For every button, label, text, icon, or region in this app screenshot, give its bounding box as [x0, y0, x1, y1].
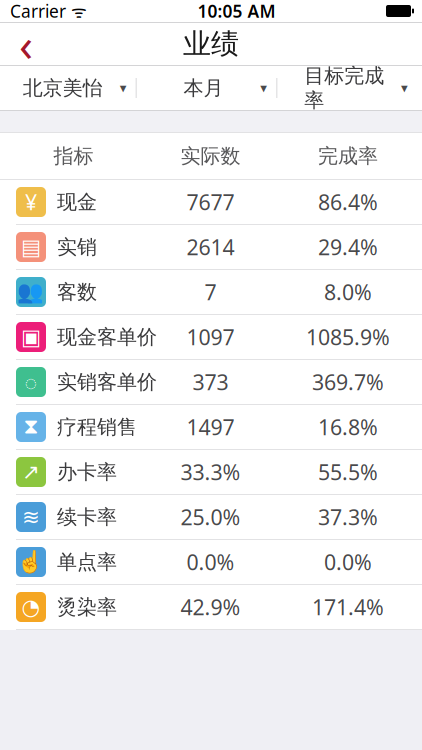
staticText: 369.7% — [312, 368, 384, 396]
staticText: 烫染率 — [57, 595, 117, 619]
staticText: 7677 — [186, 188, 234, 216]
staticText: ▤ — [21, 235, 41, 259]
staticText: 北京美怡 — [23, 76, 103, 100]
staticText: 1497 — [186, 413, 234, 441]
button[interactable]: Back — [0, 23, 52, 65]
staticText: 客数 — [57, 280, 97, 304]
staticText: ▾ — [260, 80, 267, 95]
staticText: 疗程销售 — [57, 415, 137, 439]
staticText: Carrier — [10, 0, 66, 22]
button[interactable]: 👥 — [0, 270, 422, 315]
staticText: 实销客单价 — [57, 370, 157, 394]
staticText: 实销 — [57, 235, 97, 259]
staticText: 25.0% — [180, 503, 240, 531]
button[interactable]: ◔ — [0, 585, 422, 630]
button[interactable]: ⧗ — [0, 405, 422, 450]
staticText: 16.8% — [318, 413, 378, 441]
staticText: 实际数 — [180, 144, 240, 168]
staticText: 办卡率 — [57, 460, 117, 484]
staticText: 33.3% — [180, 458, 240, 486]
staticText: 8.0% — [324, 278, 372, 306]
staticText: 42.9% — [180, 593, 240, 621]
button[interactable]: ≋ — [0, 495, 422, 540]
staticText: ↗ — [22, 460, 40, 484]
staticText: 86.4% — [318, 188, 378, 216]
button[interactable]: 目标完成率 — [281, 66, 422, 110]
staticText: 2614 — [186, 233, 234, 261]
button[interactable]: ☝ — [0, 540, 422, 585]
staticText: 指标 — [53, 144, 93, 168]
staticText: ᯤ — [66, 0, 87, 22]
staticText: 单点率 — [57, 550, 117, 574]
staticText: 业绩 — [183, 27, 239, 61]
button[interactable]: ¥ — [0, 180, 422, 225]
staticText: 0.0% — [186, 548, 234, 576]
staticText: 1097 — [186, 323, 234, 351]
staticText: ▣ — [21, 325, 41, 349]
staticText: ⧗ — [23, 417, 38, 437]
staticText: 目标完成率 — [304, 63, 384, 112]
staticText: 29.4% — [318, 233, 378, 261]
staticText: 完成率 — [318, 144, 378, 168]
staticText: ◔ — [21, 595, 40, 619]
staticText: 7 — [204, 278, 216, 306]
staticText: 10:05 AM — [197, 0, 275, 22]
button[interactable]: 北京美怡 — [0, 66, 141, 110]
staticText: 👥 — [17, 280, 44, 304]
button[interactable]: ▣ — [0, 315, 422, 360]
staticText: 现金客单价 — [57, 325, 157, 349]
staticText: ▾ — [120, 80, 127, 95]
staticText: 171.4% — [312, 593, 384, 621]
staticText: ◌ — [24, 368, 37, 396]
button[interactable]: ↗ — [0, 450, 422, 495]
staticText: 现金 — [57, 190, 97, 214]
staticText: 1085.9% — [306, 323, 390, 351]
button[interactable]: 本月 — [141, 66, 281, 110]
button[interactable]: ◌ — [0, 360, 422, 405]
staticText: ▾ — [401, 80, 408, 95]
staticText: ☝ — [17, 550, 44, 574]
staticText: 373 — [192, 368, 228, 396]
staticText: ≋ — [22, 505, 40, 529]
staticText: 本月 — [183, 76, 223, 100]
staticText: 37.3% — [318, 503, 378, 531]
staticText: 0.0% — [324, 548, 372, 576]
staticText: 55.5% — [318, 458, 378, 486]
staticText: 续卡率 — [57, 505, 117, 529]
staticText: ¥ — [25, 188, 37, 216]
staticText: ‹ — [19, 14, 33, 74]
button[interactable]: ▤ — [0, 225, 422, 270]
